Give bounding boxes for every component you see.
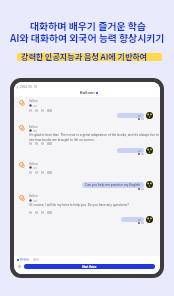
button[interactable]: Start Voice	[24, 264, 155, 269]
staticText: Start Voice	[82, 265, 97, 268]
button[interactable]: Message action	[35, 211, 38, 214]
button[interactable]: Play audio	[29, 129, 32, 132]
button[interactable]: Message action	[41, 109, 44, 112]
staticText: Can you help me practice my English	[85, 183, 141, 187]
button[interactable]: Message action	[41, 142, 44, 145]
button[interactable]: Play audio	[29, 166, 32, 169]
button[interactable]: Message action	[41, 211, 44, 214]
button[interactable]: Message action	[35, 109, 38, 112]
button[interactable]: Message action	[35, 171, 38, 174]
button[interactable]: Message action	[29, 171, 32, 174]
button[interactable]: Message action	[41, 171, 44, 174]
staticText: 한국어	[20, 257, 29, 262]
button[interactable]: Message action	[29, 211, 32, 214]
button[interactable]	[117, 148, 144, 153]
button[interactable]: Message action	[29, 109, 32, 112]
button[interactable]: Message action	[29, 142, 32, 145]
staticText: I'm glad to hear that. The movie is a gr…	[29, 133, 159, 141]
staticText: Balloon	[29, 99, 38, 102]
staticText: 영어	[33, 257, 39, 262]
button[interactable]: Add	[17, 264, 22, 269]
button[interactable]: Can you help me practice my English	[82, 182, 144, 188]
staticText: Balloon	[80, 90, 95, 95]
button[interactable]: Play audio	[29, 104, 32, 107]
button[interactable]	[121, 217, 144, 222]
staticText: AI와 대화하여 외국어 능력 향상시키기	[10, 31, 165, 45]
staticText: Balloon	[29, 194, 38, 197]
button[interactable]: Back	[15, 84, 39, 90]
staticText: Balloon	[29, 162, 38, 165]
button[interactable]: Message action	[35, 142, 38, 145]
staticText: 대화하며 배우기 즐거운 학습	[30, 19, 146, 33]
staticText: Balloon	[29, 125, 38, 128]
staticText: 2024. 05. 10	[20, 85, 38, 89]
staticText: Of course, I will do my best to help you…	[29, 203, 159, 207]
button[interactable]	[117, 113, 144, 118]
button[interactable]: Play audio	[29, 199, 32, 202]
staticText: 강력한 인공지능과 음성 AI에 기반하여	[21, 51, 148, 63]
